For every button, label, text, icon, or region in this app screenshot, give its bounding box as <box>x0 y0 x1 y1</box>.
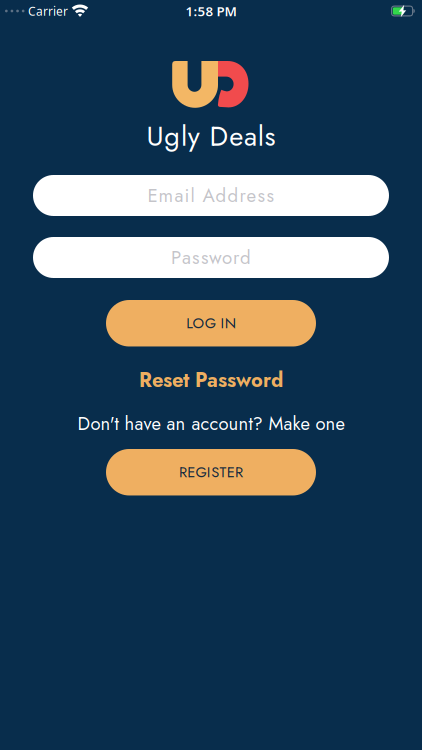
staticText: Email Address <box>147 182 274 209</box>
button[interactable]: Password <box>33 237 389 278</box>
staticText: REGISTER <box>179 462 243 483</box>
staticText: Password <box>171 244 251 271</box>
staticText: Ugly Deals <box>146 116 276 156</box>
button[interactable]: REGISTER <box>106 449 316 495</box>
button[interactable]: Reset Password <box>139 365 283 394</box>
staticText: LOG IN <box>186 313 236 334</box>
staticText: 1:58 PM <box>185 2 236 20</box>
staticText: Reset Password <box>139 365 283 394</box>
staticText: Don't have an account? Make one <box>77 410 344 437</box>
button[interactable]: LOG IN <box>106 300 316 346</box>
button[interactable]: Email Address <box>33 175 389 216</box>
staticText: Carrier <box>28 3 68 19</box>
